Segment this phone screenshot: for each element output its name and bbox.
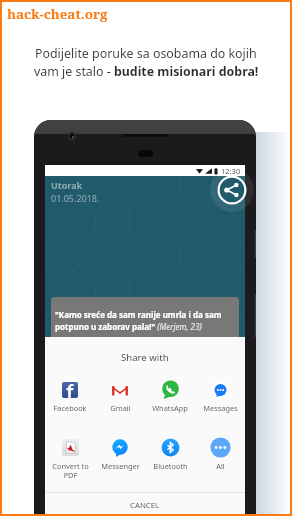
button[interactable]: WhatsApp <box>145 379 195 413</box>
button[interactable]: Share <box>203 161 256 219</box>
staticText: All <box>216 461 225 471</box>
staticText: 01.05.2018. <box>51 192 100 204</box>
staticText: Messages <box>203 403 238 413</box>
button[interactable]: Gmail <box>95 379 145 413</box>
button[interactable]: CANCEL <box>45 493 245 514</box>
staticText: Gmail <box>110 403 131 413</box>
staticText: Facebook <box>53 403 87 413</box>
staticText: 12:30 <box>221 166 241 176</box>
button[interactable]: Messenger <box>95 437 145 471</box>
staticText: Messenger <box>101 461 140 471</box>
button[interactable]: Convert to PDF <box>45 437 95 481</box>
button[interactable]: Bluetooth <box>145 437 195 471</box>
staticText: Utorak <box>51 179 83 191</box>
staticText: Convert to PDF <box>52 461 89 481</box>
button[interactable]: All <box>195 437 245 471</box>
staticText: CANCEL <box>130 500 160 511</box>
staticText: Podijelite poruke sa osobama do kojih <box>35 45 257 62</box>
staticText: WhatsApp <box>152 403 188 413</box>
button[interactable]: Messages <box>195 379 245 413</box>
staticText: vam je stalo - budite misionari dobra! <box>34 63 259 80</box>
staticText: Share with <box>121 351 169 364</box>
staticText: Bluetooth <box>153 461 188 471</box>
button[interactable]: Facebook <box>45 379 95 413</box>
staticText: hack-cheat.org <box>7 5 108 23</box>
staticText: "Kamo sreće da sam ranije umrla i da sam… <box>55 309 239 333</box>
